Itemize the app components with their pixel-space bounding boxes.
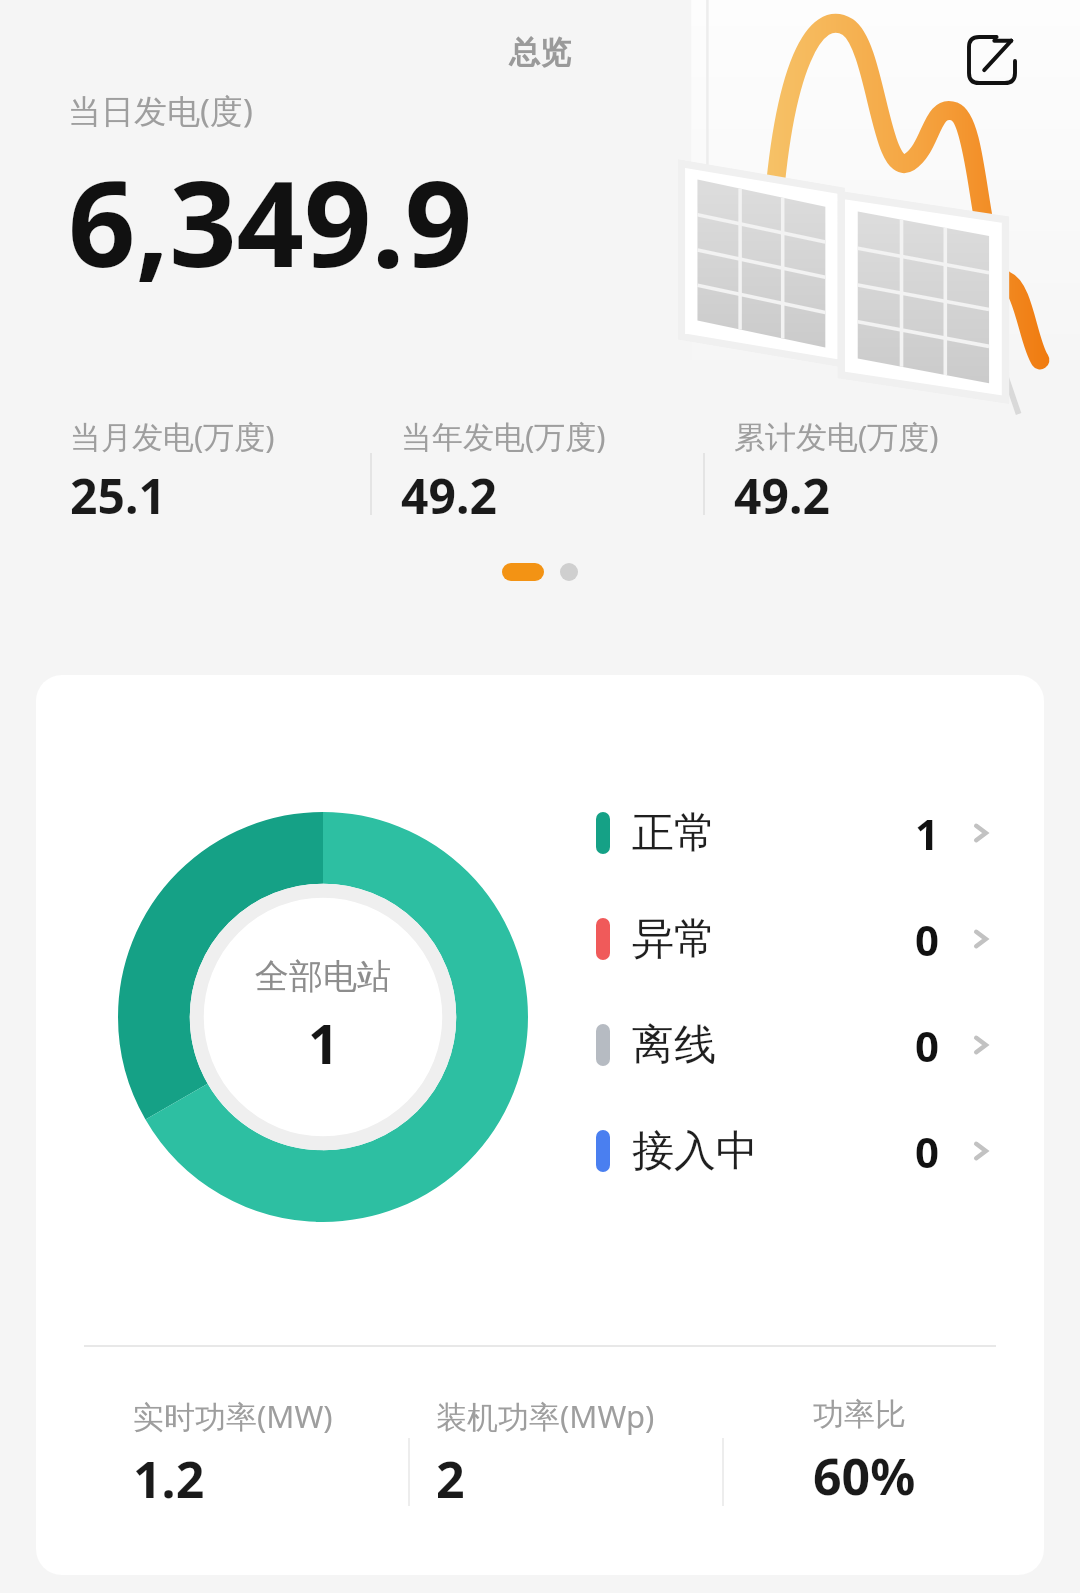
staticText: 异常 [632,913,716,966]
staticText: 0 [915,1017,940,1074]
staticText: 全部电站 [255,955,391,998]
staticText: 离线 [632,1019,716,1072]
staticText: 49.2 [734,463,830,528]
staticText: 累计发电(万度) [734,415,939,457]
staticText: 正常 [632,807,716,860]
staticText: 总览 [509,33,571,72]
button[interactable]: 正常 [596,785,996,881]
staticText: 接入中 [632,1125,758,1178]
staticText: 0 [915,1123,940,1180]
button[interactable]: 离线 [596,997,996,1093]
staticText: 60% [813,1442,916,1510]
button[interactable]: Share [958,26,1026,94]
staticText: 1 [915,805,940,862]
staticText: 当年发电(万度) [401,415,606,457]
staticText: 25.1 [70,463,166,528]
staticText: 当日发电(度) [68,88,253,133]
staticText: 49.2 [401,463,497,528]
staticText: 1 [308,1006,339,1080]
staticText: 功率比 [813,1395,906,1434]
staticText: 2 [436,1445,465,1513]
staticText: 实时功率(MW) [133,1395,333,1437]
button[interactable]: 接入中 [596,1103,996,1199]
staticText: 6,349.9 [68,141,473,302]
button[interactable]: 异常 [596,891,996,987]
staticText: 0 [915,911,940,968]
staticText: 装机功率(MWp) [436,1395,655,1437]
staticText: 1.2 [133,1445,205,1513]
staticText: 当月发电(万度) [70,415,275,457]
